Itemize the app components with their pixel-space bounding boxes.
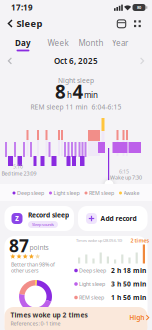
staticText: 5:10 xyxy=(13,163,23,170)
staticText: Year xyxy=(112,38,128,48)
button[interactable]: Add record xyxy=(78,206,147,231)
staticText: z xyxy=(15,213,19,223)
staticText: Record sleep xyxy=(28,211,69,219)
staticText: REM sleep 11 min 6:04-6:15 xyxy=(30,103,121,111)
staticText: 2 times xyxy=(130,237,149,244)
button[interactable]: Year xyxy=(109,37,131,49)
staticText: Night sleep xyxy=(58,76,94,85)
staticText: Times woke up 2 times xyxy=(10,311,87,319)
staticText: 2 h 18 min xyxy=(111,266,146,275)
staticText: Better than 98% of xyxy=(11,261,55,268)
staticText: References: 0-1 time xyxy=(10,320,60,327)
staticText: Times woke up (28.09-6.10) xyxy=(76,238,122,243)
staticText: 6:15 xyxy=(119,168,129,175)
staticText: 17:19 xyxy=(11,2,33,13)
button[interactable]: z xyxy=(4,206,74,231)
button[interactable] xyxy=(133,19,142,28)
staticText: 4 xyxy=(72,79,83,104)
staticText: Awake xyxy=(123,189,139,197)
staticText: Bed time 23:09 xyxy=(1,170,36,177)
staticText: Deep sleep xyxy=(79,267,106,274)
staticText: 80 xyxy=(137,5,141,10)
staticText: 87 xyxy=(9,234,29,257)
staticText: h xyxy=(67,90,72,100)
staticText: 8 xyxy=(55,79,66,104)
staticText: 1 h 56 min xyxy=(111,293,146,302)
staticText: Day xyxy=(15,38,31,48)
staticText: other users xyxy=(11,267,39,274)
staticText: Week xyxy=(47,38,68,48)
staticText: Month xyxy=(78,38,103,48)
button[interactable]: Times woke up 2 times xyxy=(4,307,147,330)
staticText: Deep sleep xyxy=(17,189,44,197)
staticText: REM sleep xyxy=(79,294,104,301)
staticText: Add record xyxy=(100,214,136,223)
staticText: Oct 6, 2025 xyxy=(54,56,98,66)
button[interactable]: Day xyxy=(12,37,34,49)
staticText: High xyxy=(129,313,144,322)
staticText: 3 h 50 min xyxy=(111,280,146,288)
staticText: Light sleep xyxy=(53,189,79,197)
staticText: Sleep xyxy=(16,17,42,30)
staticText: REM sleep xyxy=(89,189,114,197)
button[interactable]: Week xyxy=(46,37,70,49)
button[interactable]: Month xyxy=(78,37,104,49)
button[interactable] xyxy=(138,56,146,65)
button[interactable] xyxy=(5,17,17,30)
staticText: Wake up 7:30 xyxy=(110,174,142,181)
staticText: points xyxy=(29,243,48,252)
staticText: Sleep sounds xyxy=(32,222,54,227)
button[interactable] xyxy=(6,56,14,65)
button[interactable] xyxy=(116,18,127,29)
staticText: min xyxy=(84,90,98,100)
staticText: Light sleep xyxy=(79,280,105,288)
